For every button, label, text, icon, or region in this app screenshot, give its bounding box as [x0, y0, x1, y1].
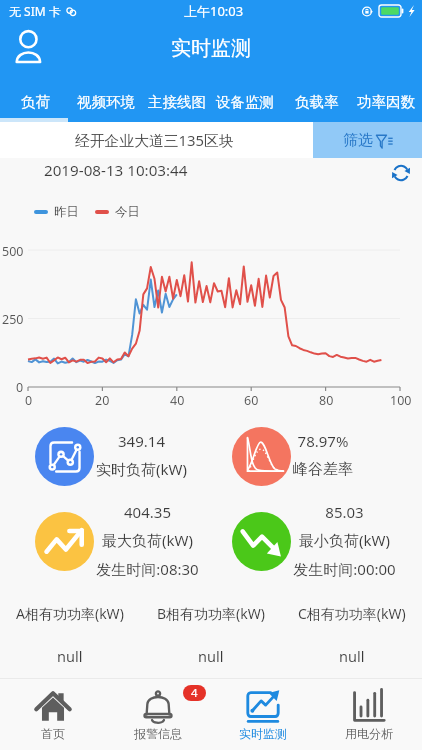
staticText: 筛选	[343, 131, 373, 150]
staticText: 60	[244, 392, 259, 409]
staticText: 功率因数	[357, 93, 415, 111]
staticText: A相有功功率(kW)	[16, 604, 124, 623]
button[interactable]: 用电分析	[316, 678, 422, 750]
button[interactable]: 负载率	[287, 82, 347, 122]
staticText: null	[57, 646, 83, 666]
button[interactable]: 筛选	[313, 122, 422, 158]
staticText: 实时监测	[239, 726, 287, 741]
button[interactable]: Account	[14, 30, 44, 64]
button[interactable]: 视频环境	[69, 82, 143, 122]
staticText: 4	[191, 685, 198, 701]
staticText: 实时监测	[171, 36, 251, 61]
staticText: 500	[2, 243, 24, 260]
button[interactable]: 主接线图	[140, 82, 214, 122]
staticText: 250	[2, 311, 24, 328]
staticText: 349.14 实时负荷(kW)	[96, 431, 187, 479]
staticText: null	[339, 646, 365, 666]
staticText: 0	[16, 379, 24, 396]
button[interactable]: Refresh	[391, 163, 411, 183]
staticText: 今日	[115, 204, 140, 220]
button[interactable]: 负荷	[12, 82, 58, 122]
staticText: 视频环境	[77, 93, 135, 111]
staticText: B相有功功率(kW)	[157, 604, 265, 623]
staticText: 85.03 最小负荷(kW) 发生时间:00:00	[293, 502, 396, 579]
staticText: 40	[170, 392, 185, 409]
staticText: 20	[95, 392, 110, 409]
staticText: 昨日	[54, 204, 79, 220]
button[interactable]: 404.35 最大负荷(kW) 发生时间:08:30	[35, 512, 138, 589]
button[interactable]: 4	[105, 678, 210, 750]
staticText: 上午10:03	[184, 2, 244, 20]
staticText: 无 SIM 卡	[9, 3, 61, 19]
staticText: 0	[25, 392, 33, 409]
button[interactable]: 85.03 最小负荷(kW) 发生时间:00:00	[232, 512, 335, 589]
staticText: null	[198, 646, 224, 666]
staticText: 80	[319, 392, 334, 409]
staticText: 首页	[41, 726, 65, 741]
staticText: 2019-08-13 10:03:44	[44, 160, 188, 181]
staticText: 78.97% 峰谷差率	[293, 431, 353, 478]
staticText: 404.35 最大负荷(kW) 发生时间:08:30	[96, 502, 199, 579]
staticText: 负载率	[295, 93, 339, 111]
button[interactable]: 349.14 实时负荷(kW)	[35, 427, 126, 486]
button[interactable]: 78.97% 峰谷差率	[232, 427, 292, 486]
staticText: 负荷	[21, 93, 50, 111]
button[interactable]: 实时监测	[210, 678, 316, 750]
button[interactable]: 首页	[0, 678, 105, 750]
staticText: C相有功功率(kW)	[298, 604, 406, 623]
staticText: 100	[390, 392, 412, 409]
button[interactable]: 设备监测	[208, 82, 282, 122]
button[interactable]: 功率因数	[349, 82, 422, 122]
staticText: 主接线图	[148, 93, 206, 111]
staticText: 设备监测	[216, 93, 274, 111]
staticText: 用电分析	[345, 726, 393, 741]
staticText: 报警信息	[134, 726, 182, 741]
button[interactable]: 经开企业大道三135区块	[75, 130, 234, 150]
